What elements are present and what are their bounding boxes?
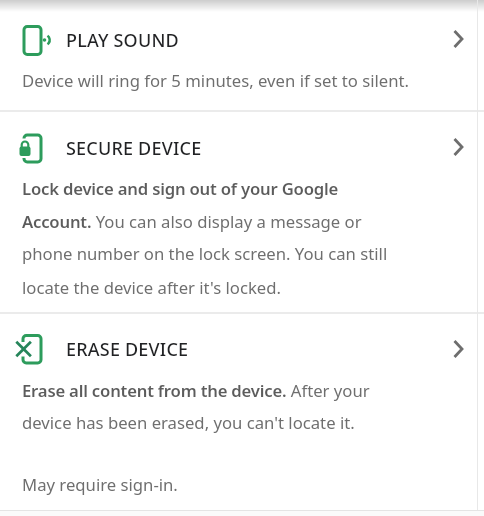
staticText: SECURE DEVICE	[66, 136, 202, 161]
staticText: May require sign-in.	[22, 473, 178, 496]
staticText: Erase all content from the device. After…	[22, 379, 370, 402]
button[interactable]: SECURE DEVICE	[0, 112, 484, 312]
staticText: Account. You can also display a message …	[22, 210, 362, 233]
staticText: ERASE DEVICE	[66, 337, 189, 362]
staticText: locate the device after it's locked.	[22, 276, 282, 299]
staticText: PLAY SOUND	[66, 28, 179, 53]
button[interactable]: ERASE DEVICE	[0, 314, 484, 449]
staticText: phone number on the lock screen. You can…	[22, 242, 388, 265]
staticText: device has been erased, you can't locate…	[22, 411, 355, 434]
button[interactable]: PLAY SOUND	[0, 12, 484, 110]
staticText: Device will ring for 5 minutes, even if …	[22, 69, 410, 92]
staticText: Lock device and sign out of your Google	[22, 177, 339, 200]
